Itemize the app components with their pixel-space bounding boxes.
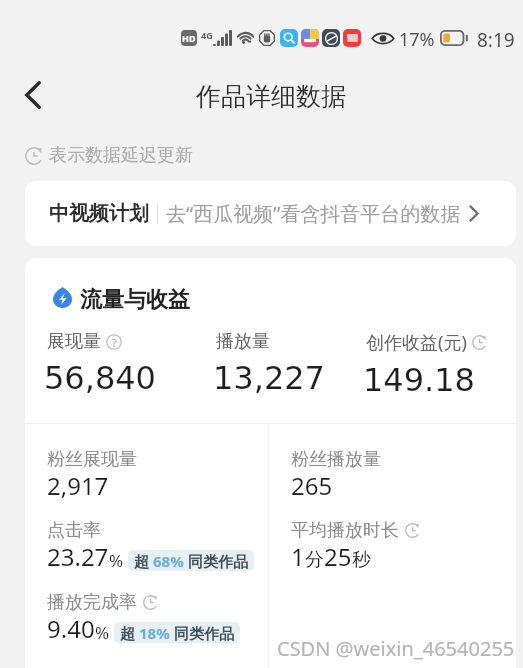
staticText: 播放量 (216, 330, 270, 353)
button[interactable]: Back (11, 73, 55, 117)
staticText: 1 (291, 540, 305, 573)
staticText: 点击率 (47, 519, 101, 542)
staticText: 18% (139, 623, 170, 643)
staticText: 流量与收益 (80, 286, 190, 314)
staticText: 56,840 (44, 359, 156, 396)
staticText: ? (112, 335, 117, 350)
staticText: 17% (399, 27, 435, 49)
staticText: 作品详细数据 (196, 81, 346, 112)
staticText: 265 (291, 469, 333, 502)
staticText: % (95, 621, 110, 644)
staticText: CSDN @weixin_46540255 (277, 635, 515, 662)
staticText: 粉丝播放量 (291, 448, 381, 471)
staticText: HD (182, 32, 196, 44)
button[interactable]: 中视频计划 (25, 181, 516, 246)
staticText: 9.40 (47, 612, 95, 645)
staticText: 8:19 (477, 27, 515, 49)
staticText: 粉丝展现量 (47, 448, 137, 471)
staticText: 中视频计划 (49, 201, 149, 226)
staticText: 去“西瓜视频”看含抖音平台的数据 (166, 200, 461, 227)
staticText: 分 (305, 548, 324, 572)
staticText: 13,227 (213, 359, 325, 396)
staticText: 149.18 (363, 361, 475, 398)
staticText: 68% (153, 551, 184, 571)
staticText: 播放完成率 (47, 591, 137, 614)
staticText: 展现量 (47, 330, 101, 353)
staticText: 平均播放时长 (291, 519, 399, 542)
staticText: 创作收益(元) (366, 330, 467, 355)
staticText: 同类作品 (170, 623, 234, 643)
staticText: 超 (120, 623, 139, 643)
staticText: 4G (201, 29, 213, 41)
staticText: 秒 (352, 548, 371, 572)
staticText: 25 (324, 540, 352, 573)
staticText: 23.27 (47, 540, 109, 573)
staticText: 同类作品 (184, 551, 248, 571)
staticText: 超 (134, 551, 153, 571)
staticText: % (109, 549, 124, 572)
staticText: 2,917 (47, 469, 109, 502)
staticText: 表示数据延迟更新 (49, 144, 193, 167)
